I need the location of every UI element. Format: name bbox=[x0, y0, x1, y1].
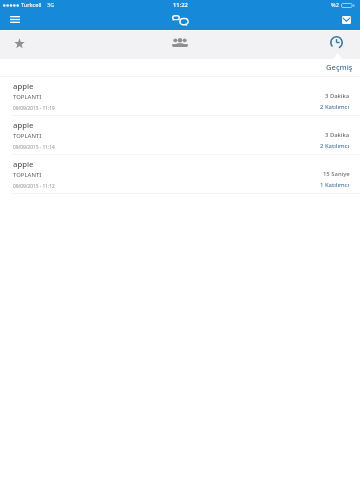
button[interactable]: Menu bbox=[5, 12, 25, 27]
staticText: TOPLANTI bbox=[13, 132, 42, 140]
button[interactable]: Groups bbox=[165, 29, 195, 55]
staticText: TOPLANTI bbox=[13, 93, 42, 101]
staticText: Turkcell bbox=[21, 1, 42, 9]
staticText: apple bbox=[13, 81, 34, 91]
button[interactable]: apple bbox=[0, 77, 360, 116]
button[interactable]: History bbox=[324, 29, 349, 55]
staticText: 15 Saniye bbox=[323, 170, 350, 178]
staticText: 09/09/2015 - 11:14 bbox=[13, 144, 55, 151]
staticText: %2 bbox=[331, 1, 339, 9]
staticText: 11:22 bbox=[173, 1, 188, 9]
staticText: 2 Katılımcı bbox=[320, 142, 350, 150]
staticText: 09/09/2015 - 11:12 bbox=[13, 183, 55, 190]
staticText: Geçmiş bbox=[326, 62, 353, 72]
button[interactable]: Messages bbox=[339, 12, 354, 27]
staticText: apple bbox=[13, 159, 34, 169]
staticText: 3 Dakika bbox=[325, 92, 350, 100]
staticText: 3 Dakika bbox=[325, 131, 350, 139]
staticText: 3G bbox=[47, 1, 55, 9]
button[interactable]: apple bbox=[0, 155, 360, 194]
staticText: 09/09/2015 - 11:19 bbox=[13, 105, 55, 112]
button[interactable]: apple bbox=[0, 116, 360, 155]
staticText: TOPLANTI bbox=[13, 171, 42, 179]
staticText: 1 Katılımcı bbox=[320, 181, 350, 189]
button[interactable]: Favorites bbox=[7, 30, 32, 56]
staticText: 2 Katılımcı bbox=[320, 103, 350, 111]
staticText: apple bbox=[13, 120, 34, 130]
